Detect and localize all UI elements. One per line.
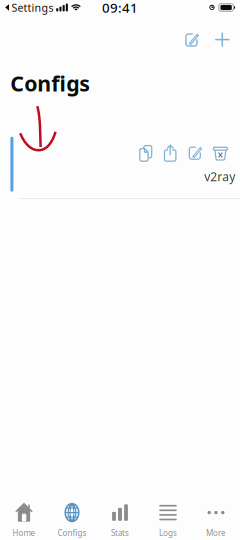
button[interactable]: Delete <box>213 145 228 162</box>
staticText: Configs <box>57 528 86 538</box>
staticText: Settings <box>11 0 53 15</box>
staticText: More <box>206 528 226 538</box>
button[interactable]: Compose <box>180 28 203 52</box>
button[interactable]: Stats <box>96 491 144 540</box>
button[interactable]: Duplicate <box>139 144 152 162</box>
button[interactable]: Share <box>164 144 177 162</box>
button[interactable]: More <box>192 491 240 540</box>
staticText: Stats <box>111 528 129 538</box>
staticText: Home <box>12 528 35 538</box>
button[interactable]: Add <box>210 27 235 52</box>
button[interactable]: Edit <box>188 146 201 160</box>
staticText: v2ray <box>204 168 235 184</box>
staticText: Configs <box>10 69 90 97</box>
staticText: Logs <box>159 528 177 538</box>
button[interactable]: Configs <box>48 491 96 540</box>
button[interactable]: Logs <box>144 491 192 540</box>
button[interactable]: Home <box>0 491 48 540</box>
staticText: 09:41 <box>102 0 138 16</box>
